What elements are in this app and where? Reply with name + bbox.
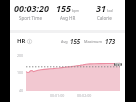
staticText: 155: [56, 2, 71, 14]
button[interactable]: 31: [86, 0, 123, 21]
staticText: 00:01:00: [50, 93, 65, 98]
staticText: 00:02:00: [77, 93, 92, 98]
button[interactable]: HR: [17, 37, 32, 45]
staticText: 100: [17, 70, 24, 75]
staticText: Sport Time: [19, 15, 43, 21]
other: Info: [27, 39, 32, 44]
staticText: bpm: [72, 9, 79, 13]
staticText: HR: [17, 37, 26, 45]
button[interactable]: 155: [49, 0, 86, 21]
staticText: 173: [105, 37, 116, 45]
staticText: Avg: [61, 39, 68, 44]
staticText: 173: [115, 63, 121, 66]
staticText: 155: [70, 37, 81, 45]
staticText: kcal: [107, 9, 113, 13]
staticText: 40: [19, 88, 24, 93]
staticText: Avg HR: [60, 15, 76, 21]
staticText: 200: [17, 53, 24, 58]
staticText: 31: [96, 2, 106, 14]
staticText: Maximum: [84, 39, 103, 44]
staticText: Calorie: [97, 15, 112, 21]
staticText: 00:03:20: [14, 2, 49, 14]
button[interactable]: 00:03:20: [13, 0, 49, 21]
